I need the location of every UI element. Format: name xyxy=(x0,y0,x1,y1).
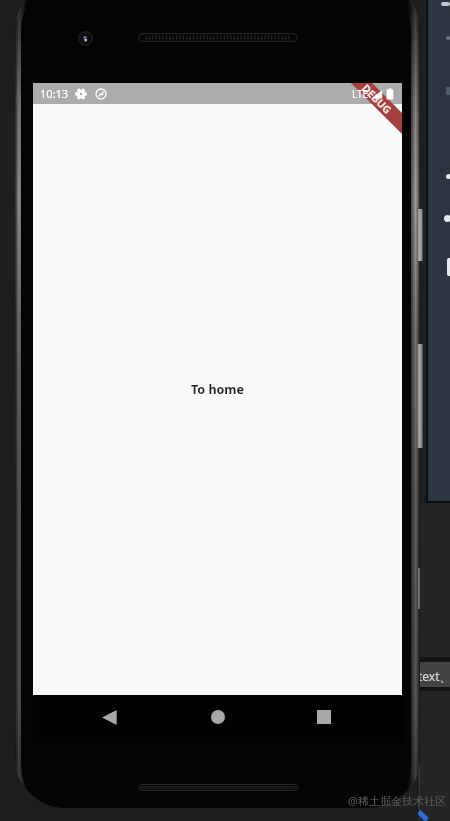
staticText: LTE xyxy=(352,87,369,101)
button[interactable]: Back xyxy=(102,710,117,725)
staticText: text、 xyxy=(418,668,450,684)
button[interactable]: Home xyxy=(211,710,225,724)
staticText: 10:13 xyxy=(40,86,69,101)
button[interactable]: To home xyxy=(191,381,244,398)
staticText: DEBUG xyxy=(359,83,395,117)
staticText: @稀土掘金技术社区 xyxy=(348,793,446,808)
staticText: To home xyxy=(191,381,244,398)
